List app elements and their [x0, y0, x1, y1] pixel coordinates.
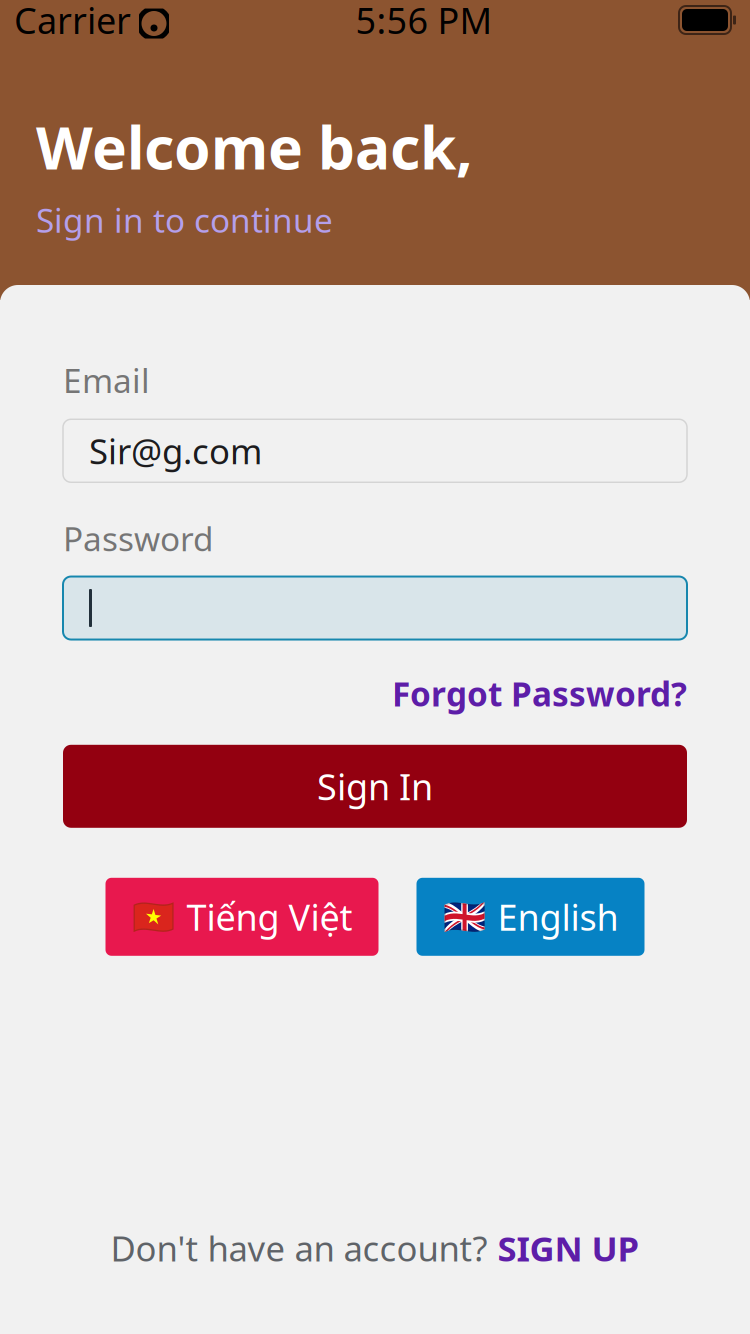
button[interactable]: Don't have an account?: [63, 1217, 687, 1279]
staticText: 5:56 PM: [355, 0, 492, 44]
button[interactable]: 🇬🇧: [416, 878, 644, 956]
staticText: Tiếng Việt: [186, 893, 352, 941]
staticText: English: [497, 893, 618, 941]
staticText: 🇬🇧: [442, 897, 485, 937]
button[interactable]: Sign In: [63, 745, 687, 828]
staticText: Forgot Password?: [392, 671, 687, 716]
staticText: Don't have an account?: [110, 1225, 487, 1271]
staticText: Email: [63, 358, 150, 402]
button[interactable]: Forgot Password?: [63, 665, 687, 722]
staticText: Sir@g.com: [89, 428, 262, 474]
staticText: Carrier: [14, 0, 131, 44]
staticText: 🇻🇳: [131, 897, 174, 937]
staticText: Password: [63, 516, 214, 561]
button[interactable]: 🇻🇳: [105, 878, 378, 956]
staticText: SIGN UP: [497, 1225, 639, 1271]
staticText: Sign In: [317, 762, 433, 810]
staticText: Sign in to continue: [36, 198, 333, 242]
staticText: Welcome back,: [36, 108, 473, 186]
